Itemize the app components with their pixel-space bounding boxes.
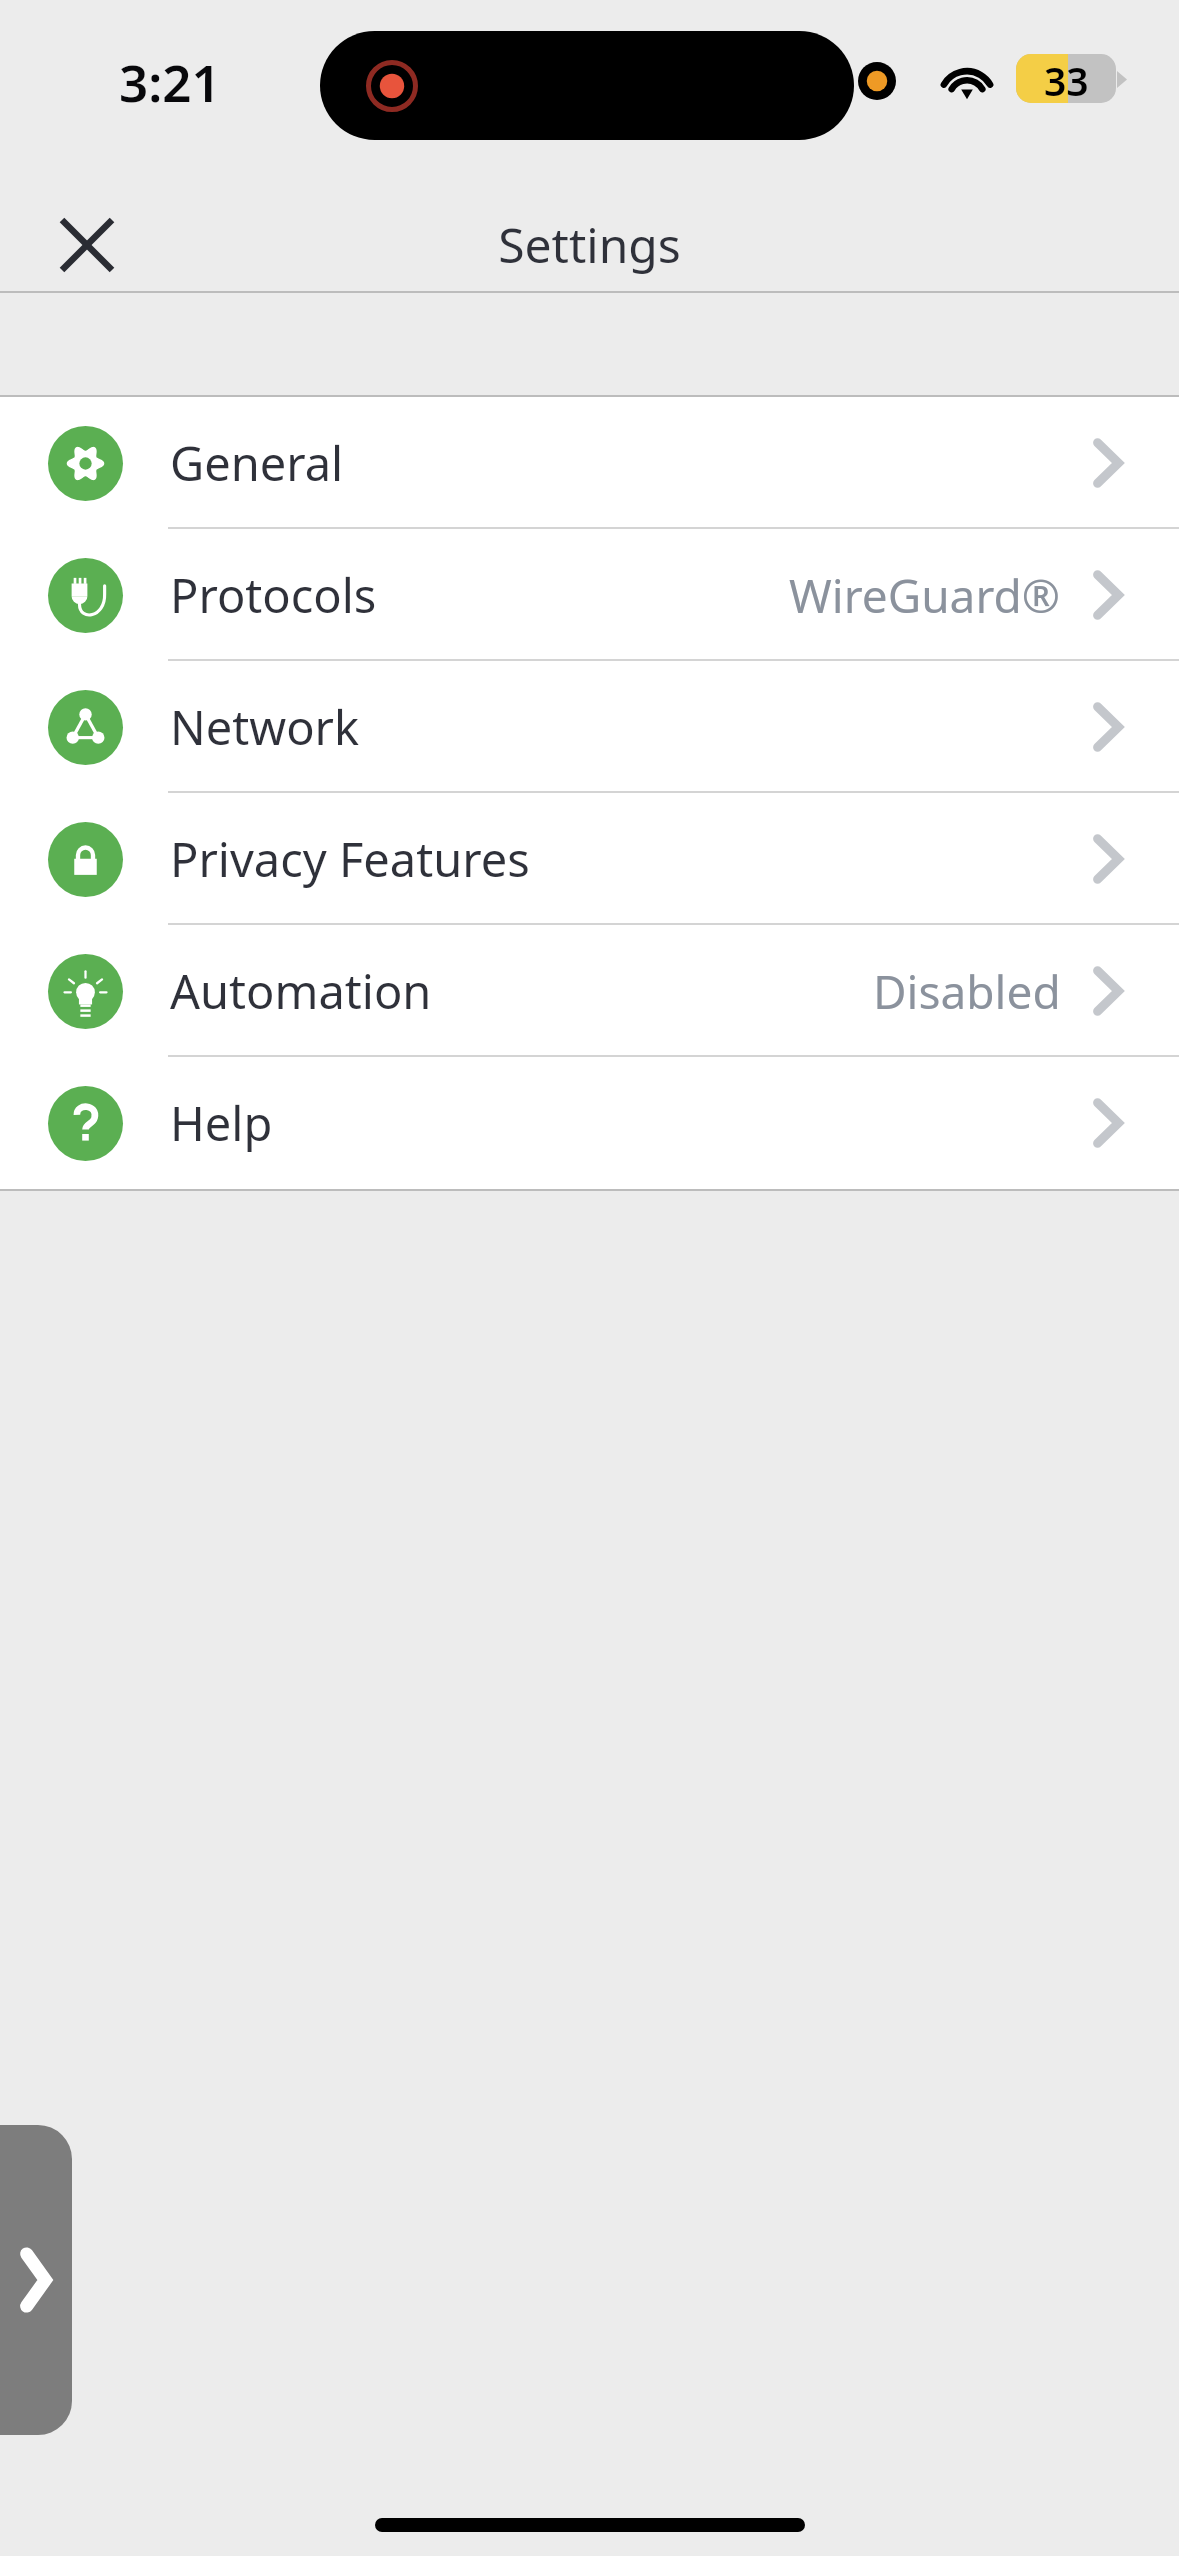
staticText: General — [170, 431, 344, 495]
staticText: Privacy Features — [170, 827, 530, 891]
button[interactable]: Help — [0, 1057, 1179, 1189]
button[interactable]: Privacy Features — [0, 793, 1179, 925]
staticText: Disabled — [873, 960, 1061, 1023]
button[interactable]: Close — [32, 196, 142, 293]
button[interactable]: General — [0, 397, 1179, 529]
button[interactable]: Automation — [0, 925, 1179, 1057]
staticText: Help — [170, 1091, 273, 1155]
staticText: 33 — [1044, 54, 1089, 103]
staticText: Settings — [498, 212, 681, 277]
staticText: WireGuard® — [789, 564, 1061, 627]
button[interactable]: Expand panel — [0, 2125, 72, 2435]
staticText: 3:21 — [119, 47, 221, 116]
button[interactable]: Protocols — [0, 529, 1179, 661]
staticText: Protocols — [170, 563, 377, 627]
staticText: Network — [170, 695, 360, 759]
staticText: Automation — [170, 959, 432, 1023]
button[interactable]: Network — [0, 661, 1179, 793]
